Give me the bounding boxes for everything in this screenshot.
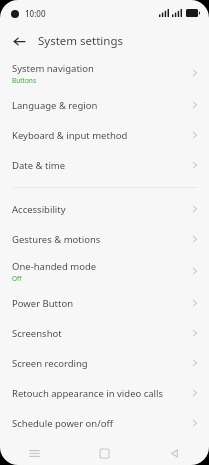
- button[interactable]: Home: [69, 441, 139, 465]
- staticText: Screen recording: [12, 357, 88, 370]
- staticText: Schedule power on/off: [12, 417, 114, 430]
- button[interactable]: Gestures & motions: [0, 224, 209, 254]
- button[interactable]: One-handed mode: [0, 254, 209, 288]
- button[interactable]: Screenshot: [0, 318, 209, 348]
- staticText: Keyboard & input method: [12, 129, 128, 142]
- staticText: System settings: [38, 33, 124, 49]
- staticText: Date & time: [12, 159, 66, 172]
- staticText: 10:00: [25, 8, 46, 19]
- staticText: One-handed mode: [12, 260, 97, 273]
- button[interactable]: System navigation: [0, 56, 209, 90]
- staticText: Accessibility: [12, 203, 66, 216]
- staticText: Retouch appearance in video calls: [12, 387, 164, 400]
- staticText: Gestures & motions: [12, 233, 101, 246]
- button[interactable]: Keyboard & input method: [0, 120, 209, 150]
- staticText: Off: [12, 274, 22, 283]
- staticText: Language & region: [12, 99, 98, 112]
- button[interactable]: Date & time: [0, 150, 209, 180]
- button[interactable]: Accessibility: [0, 194, 209, 224]
- button[interactable]: Screen recording: [0, 348, 209, 378]
- button[interactable]: Recent apps: [0, 441, 69, 465]
- button[interactable]: Power Button: [0, 288, 209, 318]
- button[interactable]: Retouch appearance in video calls: [0, 378, 209, 408]
- button[interactable]: Language & region: [0, 90, 209, 120]
- staticText: Buttons: [12, 76, 36, 85]
- staticText: Screenshot: [12, 327, 62, 340]
- staticText: System navigation: [12, 62, 94, 75]
- staticText: Power Button: [12, 297, 74, 310]
- button[interactable]: Back: [139, 441, 209, 465]
- button[interactable]: Back: [8, 30, 30, 52]
- button[interactable]: Schedule power on/off: [0, 408, 209, 438]
